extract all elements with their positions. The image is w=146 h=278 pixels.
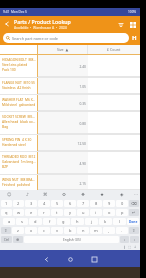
button[interactable]: 1: [1, 200, 12, 207]
button[interactable]: u: [77, 209, 89, 216]
button[interactable]: ↵: [129, 209, 139, 216]
staticText: q: [5, 210, 8, 215]
button[interactable]: 2: [13, 200, 24, 207]
button[interactable]: English (US): [24, 236, 119, 243]
button[interactable]: Ctrl: [1, 236, 12, 243]
staticText: 3: [30, 201, 33, 206]
button[interactable]: Grid view: [127, 18, 138, 31]
button[interactable]: 3: [25, 200, 37, 207]
staticText: ›: [134, 237, 136, 242]
button[interactable]: g: [57, 218, 70, 225]
button[interactable]: 0: [116, 200, 128, 207]
button[interactable]: 9: [103, 200, 115, 207]
staticText: £ Count: [107, 47, 121, 52]
button[interactable]: r: [38, 209, 50, 216]
button[interactable]: h: [71, 218, 84, 225]
button[interactable]: z: [12, 227, 24, 234]
button[interactable]: Search part name or code: [3, 33, 129, 43]
staticText: r: [43, 210, 45, 215]
button[interactable]: d: [29, 218, 42, 225]
button[interactable]: ⌫: [129, 200, 139, 207]
staticText: i: [95, 210, 97, 215]
button[interactable]: ‹: [120, 236, 129, 243]
button[interactable]: Filter: [129, 33, 139, 43]
button[interactable]: m: [90, 227, 102, 234]
button[interactable]: n: [77, 227, 89, 234]
button[interactable]: Home: [62, 251, 78, 267]
staticText: ❙ ⬚ ↓: [123, 245, 137, 249]
button[interactable]: p: [116, 209, 128, 216]
staticText: Size ▲: [57, 47, 69, 52]
button[interactable]: WASHER FLAT M6 X 18: [0, 95, 140, 111]
staticText: o: [108, 210, 111, 215]
staticText: 2: [17, 201, 20, 206]
staticText: u: [82, 210, 85, 215]
button[interactable]: ›: [130, 236, 139, 243]
staticText: Steel zinc-plated: [2, 62, 36, 66]
button[interactable]: 7: [77, 200, 89, 207]
button[interactable]: q: [1, 209, 12, 216]
staticText: SPRING PIN 4 X 30: [2, 137, 36, 141]
button[interactable]: 8: [90, 200, 102, 207]
button[interactable]: Sort: [114, 18, 127, 31]
staticText: 6: [69, 201, 72, 206]
staticText: d: [34, 219, 37, 224]
button[interactable]: f: [43, 218, 56, 225]
staticText: h: [76, 219, 79, 224]
button[interactable]: FLANGE NUT M10 SS: [0, 78, 140, 94]
button[interactable]: t: [51, 209, 63, 216]
button[interactable]: ♪: [18, 190, 36, 199]
button[interactable]: ❖: [74, 190, 93, 199]
button[interactable]: ⇧: [1, 227, 11, 234]
button[interactable]: ◈: [112, 190, 131, 199]
staticText: Search part name or code: [12, 36, 58, 41]
button[interactable]: THREADED ROD M12: [0, 152, 140, 174]
button[interactable]: ⊕: [13, 236, 23, 243]
button[interactable]: 6: [64, 200, 76, 207]
button[interactable]: SOCKET SCREW M5X25: [0, 112, 140, 134]
staticText: 9:41 Mon Dec 5: [3, 10, 27, 14]
button[interactable]: j: [85, 218, 98, 225]
button[interactable]: WING NUT M8 BRASS: [0, 175, 140, 190]
button[interactable]: b: [64, 227, 76, 234]
button[interactable]: ⇧: [129, 227, 139, 234]
button[interactable]: x: [25, 227, 37, 234]
button[interactable]: l: [113, 218, 126, 225]
button[interactable]: v: [51, 227, 63, 234]
button[interactable]: Back: [38, 251, 54, 267]
button[interactable]: s: [16, 218, 28, 225]
button[interactable]: ⌘: [36, 190, 55, 199]
button[interactable]: 4: [38, 200, 50, 207]
button[interactable]: y: [64, 209, 76, 216]
button[interactable]: c: [38, 227, 50, 234]
button[interactable]: HEXAGON BOLT M8X40: [0, 55, 140, 77]
button[interactable]: ★: [93, 190, 112, 199]
staticText: 2.40: [79, 64, 86, 68]
button[interactable]: i: [90, 209, 102, 216]
button[interactable]: Recent apps: [86, 251, 102, 267]
button[interactable]: k: [99, 218, 112, 225]
button[interactable]: e: [25, 209, 37, 216]
staticText: Allen head black oxide: [2, 119, 36, 123]
staticText: 4: [43, 201, 46, 206]
button[interactable]: w: [13, 209, 24, 216]
button[interactable]: o: [103, 209, 115, 216]
button[interactable]: 5: [51, 200, 63, 207]
staticText: English (US): [63, 238, 81, 242]
staticText: Finished polished: [2, 182, 36, 186]
staticText: 0.35: [79, 101, 86, 105]
button[interactable]: a: [3, 218, 15, 225]
button[interactable]: SPRING PIN 4 X 30: [0, 135, 140, 151]
staticText: WING NUT M8 BRASS: [2, 177, 36, 181]
button[interactable]: ☺: [0, 190, 18, 199]
button[interactable]: ⚙: [55, 190, 74, 199]
staticText: Stainless A2 finish: [2, 85, 36, 89]
button[interactable]: ,: [103, 227, 115, 234]
button[interactable]: Done: [127, 218, 139, 225]
staticText: y: [69, 210, 72, 215]
staticText: w: [17, 210, 21, 215]
button[interactable]: More: [131, 190, 140, 199]
button[interactable]: Back: [0, 17, 14, 31]
staticText: SOCKET SCREW M5X25: [2, 114, 36, 118]
